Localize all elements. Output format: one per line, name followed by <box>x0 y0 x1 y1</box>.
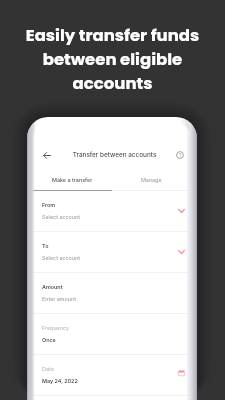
staticText: Once <box>42 337 56 344</box>
staticText: Make a transfer <box>52 177 93 184</box>
staticText: From <box>42 202 56 209</box>
button[interactable]: Make a transfer <box>33 170 112 191</box>
staticText: Amount <box>42 284 63 291</box>
button[interactable]: Manage <box>112 170 191 191</box>
staticText: Enter amount <box>42 296 76 303</box>
staticText: Select account <box>42 255 80 262</box>
button[interactable]: Frequency <box>33 314 191 355</box>
staticText: Transfer between accounts <box>60 151 169 159</box>
button[interactable]: From <box>33 191 191 232</box>
button[interactable]: Date <box>33 355 191 396</box>
staticText: Date <box>42 366 54 373</box>
button[interactable]: Back <box>33 140 60 170</box>
staticText: Easily transfer funds between eligible a… <box>0 24 225 95</box>
staticText: Select account <box>42 214 80 221</box>
button[interactable]: Help <box>169 140 191 170</box>
staticText: To <box>42 243 49 250</box>
staticText: May 24, 2022 <box>42 378 78 385</box>
staticText: Manage <box>141 177 162 184</box>
staticText: ? <box>179 152 182 158</box>
staticText: Frequency <box>42 325 69 332</box>
button[interactable]: Amount <box>33 273 191 314</box>
button[interactable]: To <box>33 232 191 273</box>
